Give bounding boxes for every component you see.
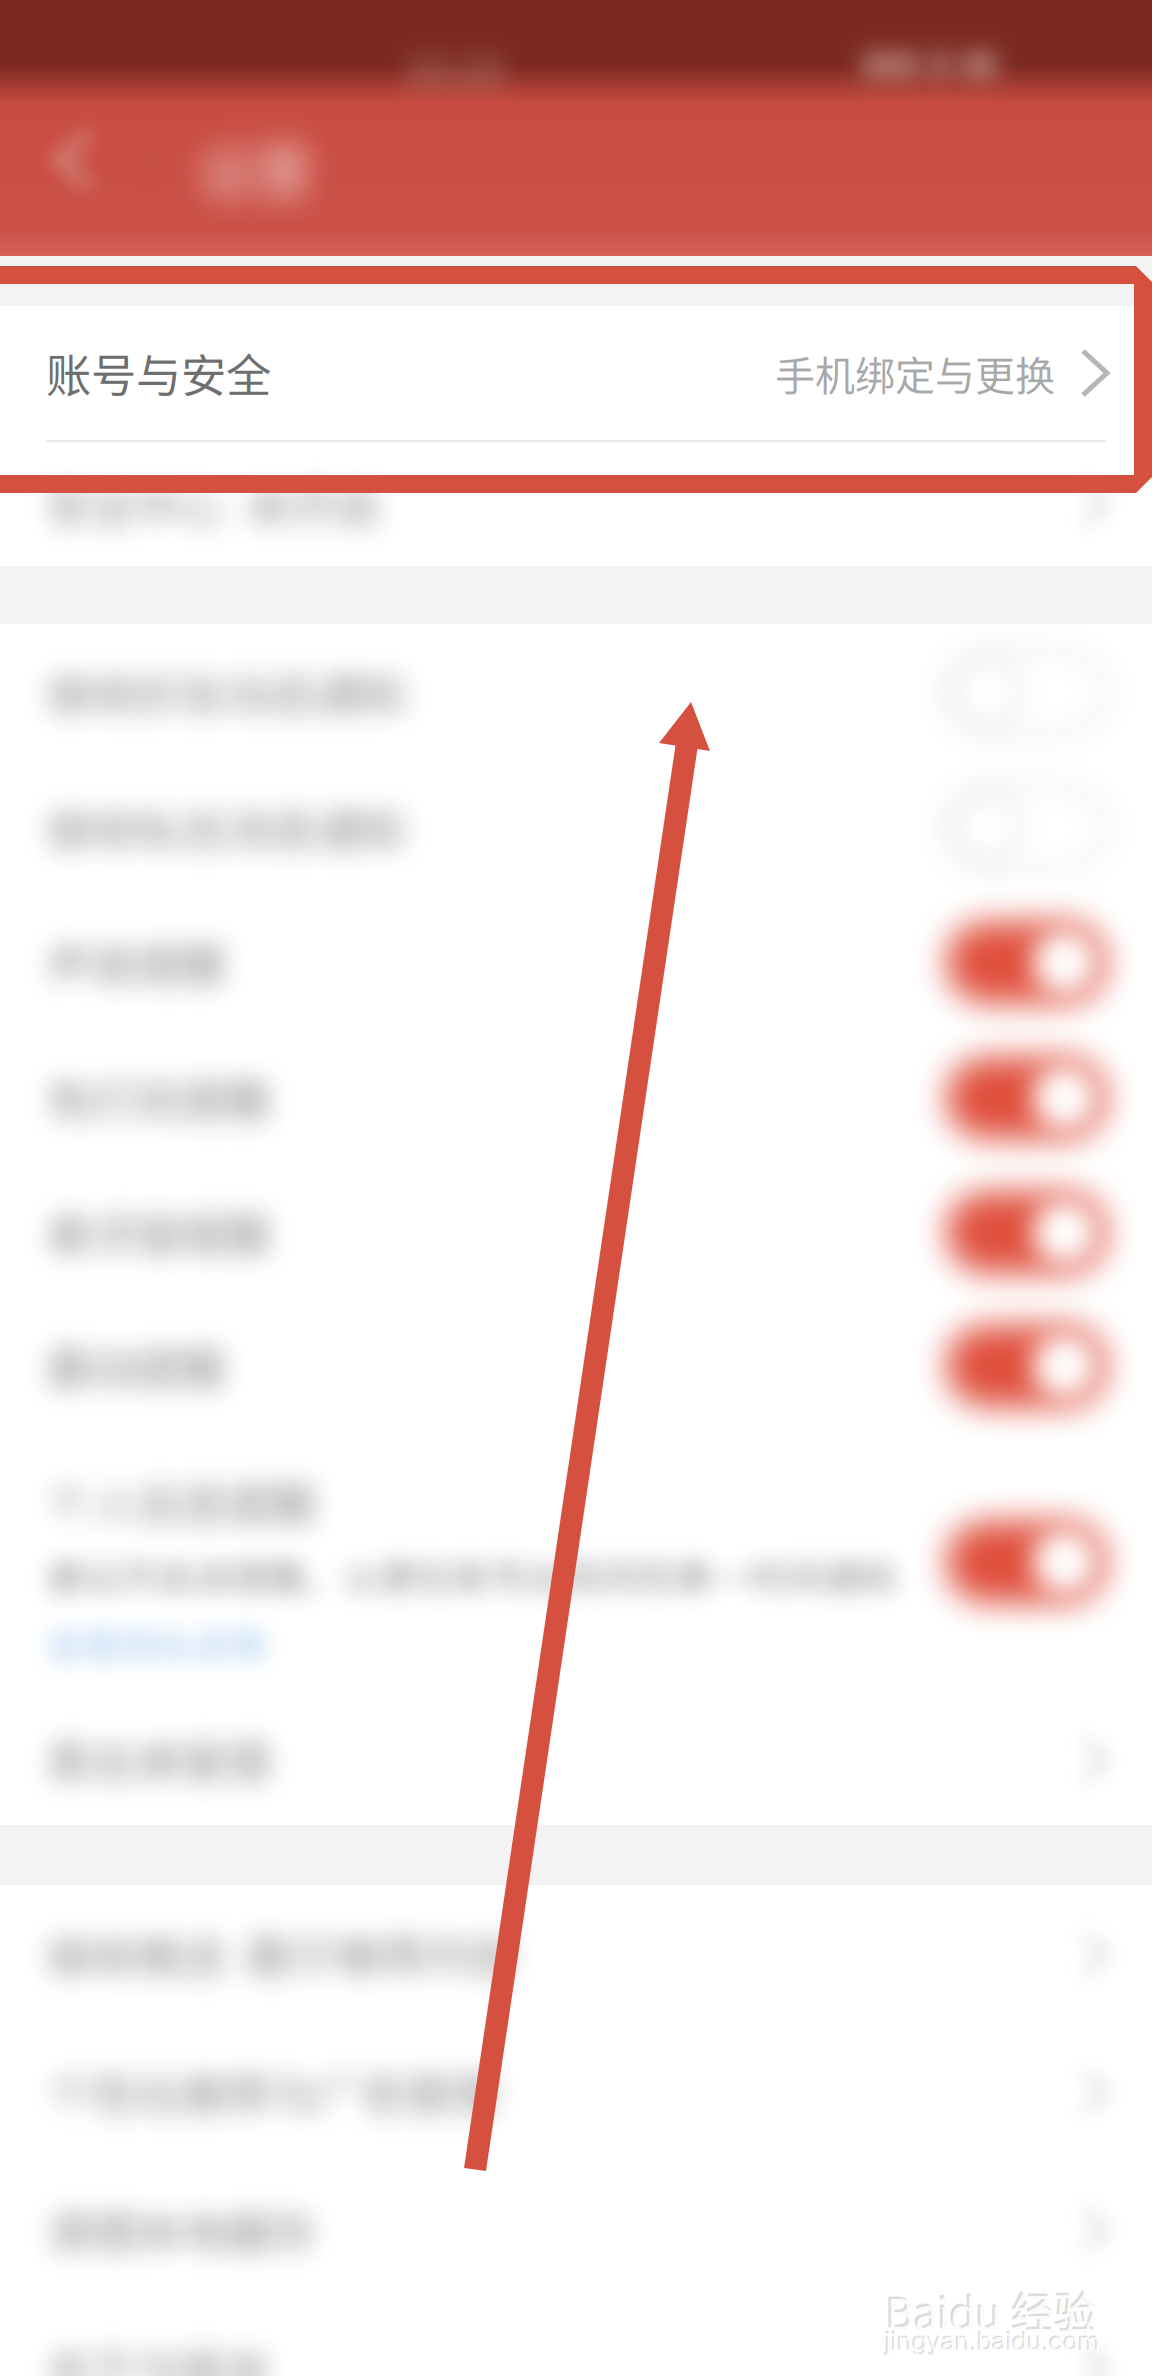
button[interactable]: 清理本地缓存 [0, 2161, 1152, 2299]
button[interactable]: 免打扰提醒 [0, 1030, 1152, 1166]
staticText: Baidu 经验 [886, 2280, 1098, 2342]
button[interactable]: 关于与版本 [0, 2299, 1152, 2376]
staticText: jingyan.baidu.com [886, 2327, 1101, 2357]
button[interactable]: 震动提醒 [0, 1299, 1152, 1433]
button[interactable]: 账号与安全 [0, 306, 1152, 440]
button[interactable]: 个性化推荐与广告管理 [0, 2023, 1152, 2161]
button[interactable]: 悬浮窗提醒 [0, 1166, 1152, 1299]
staticText: 账号与安全 [46, 340, 271, 406]
staticText: jingyan.baidu.com [884, 2325, 1099, 2356]
staticText: Baidu 经验 [884, 2278, 1096, 2340]
button[interactable]: 个人信息提醒 [0, 1433, 1152, 1695]
staticText: 手机绑定与更换 [775, 344, 1055, 402]
button[interactable]: 接收好友动态通知 [0, 624, 1152, 760]
button[interactable]: 黑名单管理 [0, 1695, 1152, 1825]
button[interactable]: 安全中心 未开启 [0, 442, 1152, 566]
button[interactable]: 声音提醒 [0, 895, 1152, 1030]
button[interactable]: 接收私信消息通知 [0, 760, 1152, 895]
button[interactable]: 接收推送 圈子推荐内容 [0, 1885, 1152, 2023]
